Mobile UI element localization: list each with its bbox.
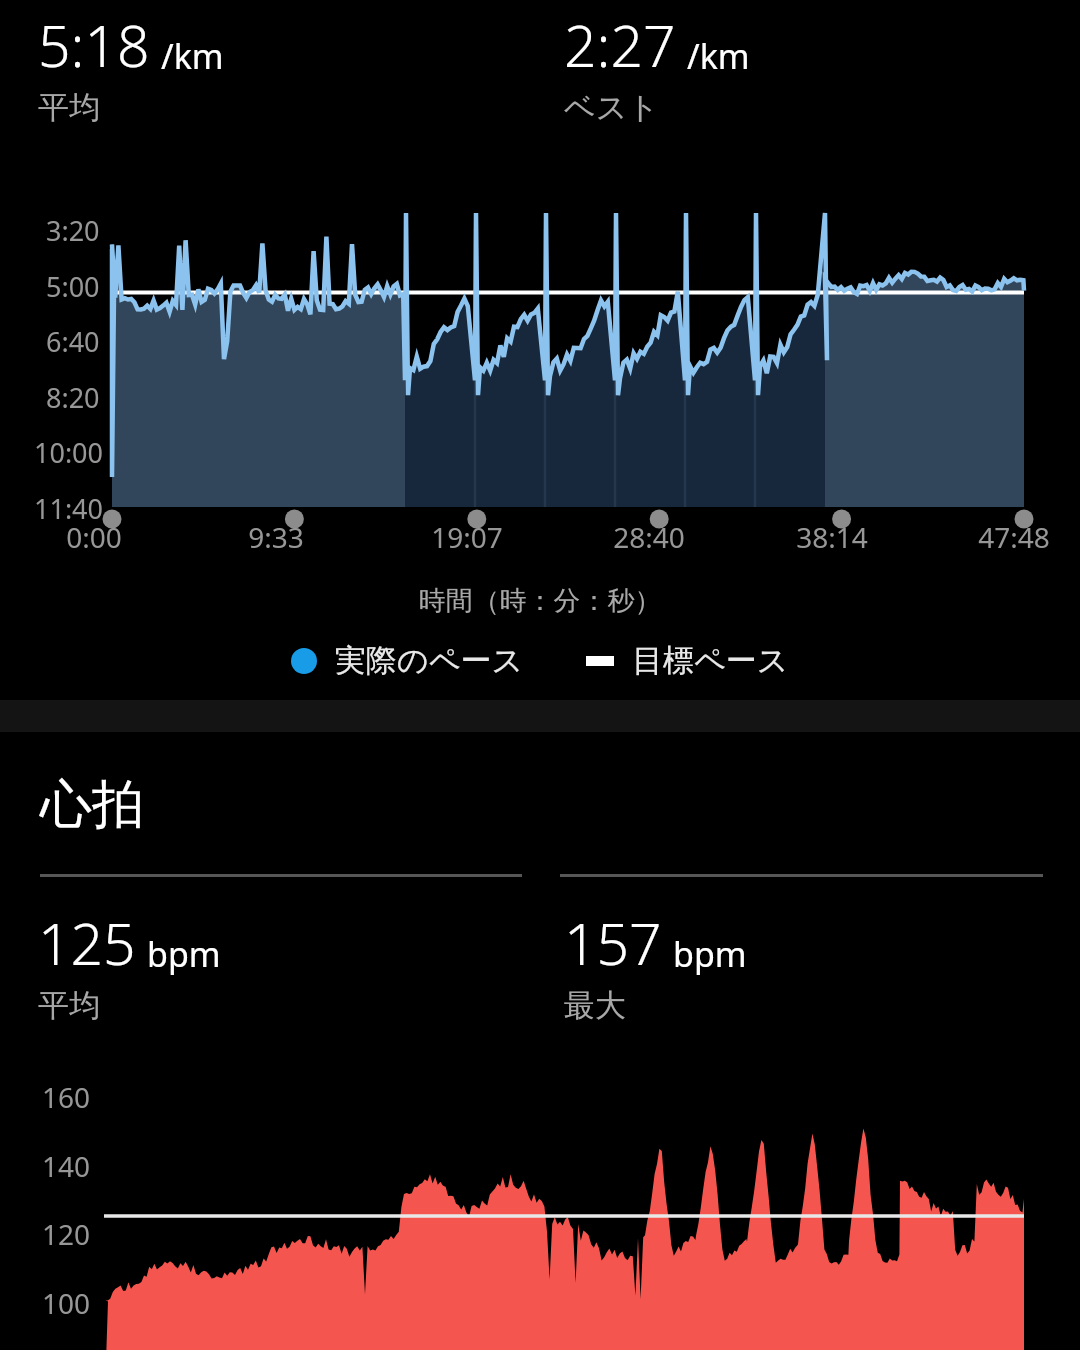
staticText: 最大 — [564, 986, 626, 1025]
staticText: 120 — [42, 1215, 91, 1253]
staticText: 28:40 — [613, 518, 685, 556]
staticText: 平均 — [38, 986, 100, 1025]
staticText: 47:48 — [978, 518, 1050, 556]
staticText: /km — [687, 33, 750, 79]
button[interactable]: 心拍グラフ — [0, 1062, 1080, 1350]
staticText: 125 — [38, 904, 136, 982]
staticText: 3:20 — [46, 212, 100, 249]
staticText: 5:00 — [46, 268, 100, 305]
staticText: 2:27 — [564, 6, 676, 84]
staticText: 心拍 — [40, 772, 144, 838]
staticText: 8:20 — [46, 379, 100, 416]
staticText: bpm — [673, 931, 747, 977]
staticText: bpm — [147, 931, 221, 977]
staticText: 100 — [42, 1284, 91, 1322]
button[interactable]: ペースグラフ — [0, 180, 1080, 570]
staticText: 160 — [42, 1078, 91, 1116]
button[interactable]: 目標ペース — [586, 641, 789, 680]
staticText: 目標ペース — [632, 641, 789, 680]
staticText: 10:00 — [34, 434, 104, 471]
button[interactable]: 実際のペース — [291, 641, 524, 680]
staticText: /km — [161, 33, 224, 79]
staticText: 5:18 — [38, 6, 150, 84]
staticText: 時間（時：分：秒） — [0, 584, 1080, 618]
staticText: 157 — [564, 904, 662, 982]
staticText: 9:33 — [248, 518, 304, 556]
staticText: 140 — [42, 1147, 91, 1185]
staticText: 19:07 — [431, 518, 503, 556]
staticText: ベスト — [564, 88, 660, 127]
staticText: 38:14 — [796, 518, 868, 556]
staticText: 6:40 — [46, 323, 100, 360]
staticText: 実際のペース — [335, 641, 524, 680]
staticText: 平均 — [38, 88, 100, 127]
staticText: 11:40 — [34, 490, 104, 527]
staticText: 0:00 — [66, 518, 122, 556]
